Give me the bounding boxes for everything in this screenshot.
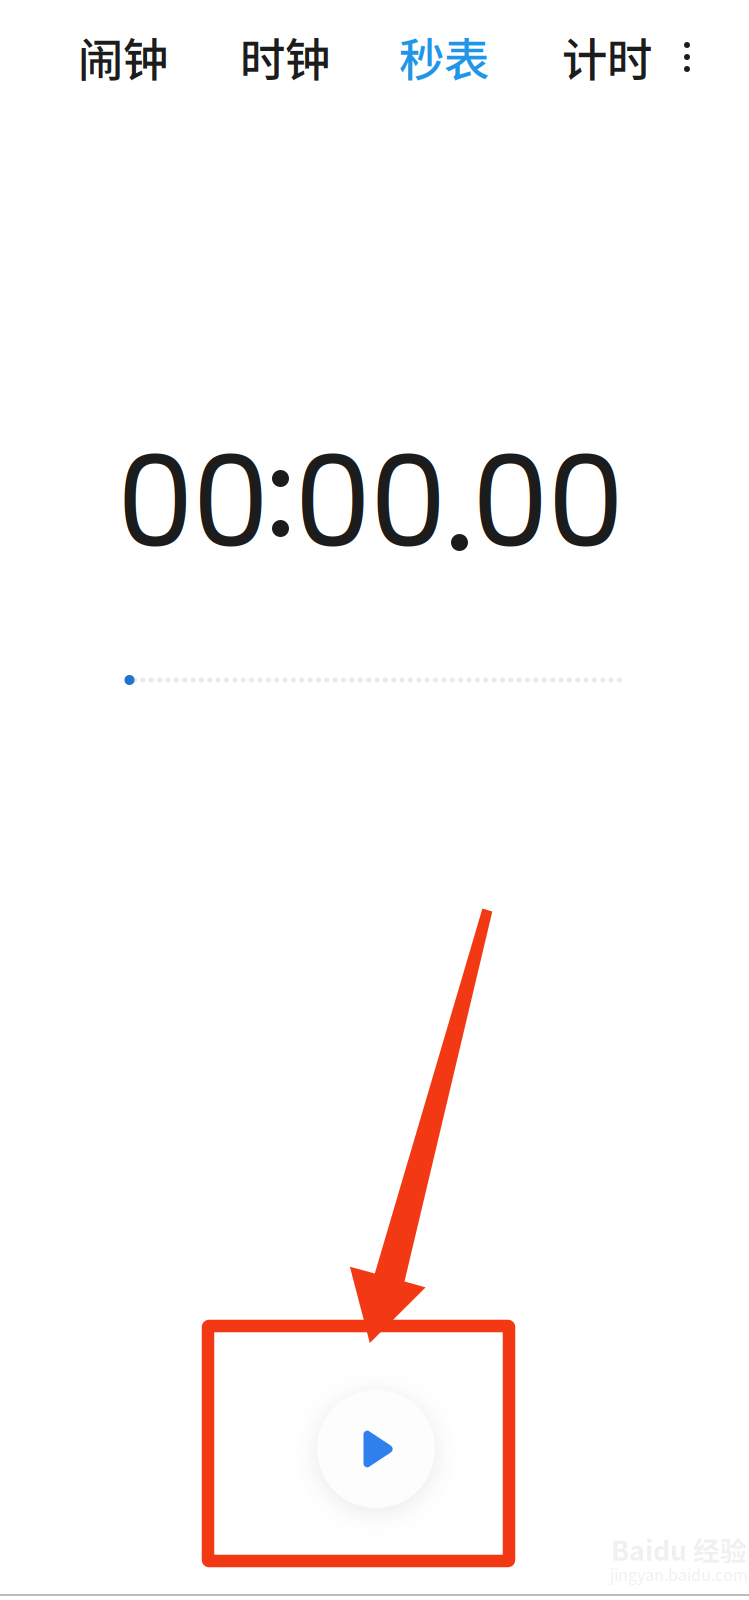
staticText: jingyan.baidu.com — [610, 1562, 748, 1586]
staticText: 秒表 — [399, 24, 489, 90]
staticText: Baidu 经验 — [611, 1530, 747, 1568]
button[interactable]: 秒表 — [388, 0, 500, 114]
staticText: 00 00 00 — [116, 415, 625, 571]
staticText: 闹钟 — [78, 24, 168, 90]
button[interactable]: Start stopwatch — [301, 1374, 451, 1524]
button[interactable]: 闹钟 — [67, 0, 179, 114]
button[interactable]: 时钟 — [229, 0, 341, 114]
staticText: 时钟 — [240, 24, 330, 90]
button[interactable]: 计时 — [551, 0, 663, 114]
staticText: 计时 — [562, 24, 652, 90]
button[interactable]: More options — [664, 0, 710, 114]
